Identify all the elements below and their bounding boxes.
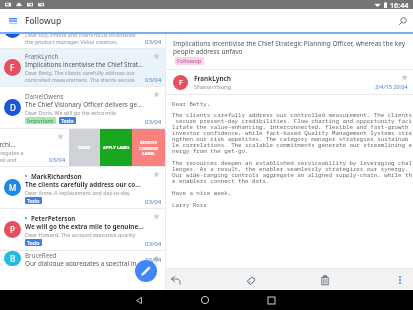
staticText: Dear Howard, The account executive quick… xyxy=(25,231,136,238)
button[interactable]: Home xyxy=(197,292,213,308)
staticText: Todo xyxy=(27,197,40,204)
button[interactable]: More options xyxy=(392,272,408,288)
staticText: Important xyxy=(27,117,54,124)
button[interactable]: P xyxy=(0,209,165,251)
staticText: 03/04 xyxy=(145,117,162,125)
staticText: Dear Roy, Phone and client-focus incenti… xyxy=(25,34,136,38)
staticText: The clients carefully address our contr… xyxy=(25,180,144,189)
staticText: B xyxy=(10,253,16,264)
button[interactable]: APPLY LABEL xyxy=(100,129,132,166)
button[interactable]: Reply xyxy=(168,272,184,288)
button[interactable]: Recents xyxy=(263,292,279,308)
button[interactable]: B xyxy=(0,251,165,266)
button[interactable]: Compose xyxy=(135,260,157,282)
staticText: Dear Betty, The clients carefully addres… xyxy=(172,100,412,209)
button[interactable]: Label xyxy=(243,272,259,288)
staticText: Strategic assignments archi… xyxy=(0,140,16,149)
staticText: Todo xyxy=(61,117,74,124)
staticText: Todo xyxy=(27,239,40,246)
button[interactable]: Open navigation drawer xyxy=(4,12,22,30)
button[interactable]: M xyxy=(0,167,165,209)
staticText: 03/04 xyxy=(145,75,162,83)
staticText: F xyxy=(10,62,15,73)
staticText: Our dialogue aggregates a spectral inn… xyxy=(25,259,144,266)
staticText: Implications incentivise the Chief Strat… xyxy=(25,60,144,69)
staticText: REMOVE CURRENT LABEL xyxy=(132,140,165,156)
staticText: 03/04 xyxy=(145,37,162,45)
staticText: We will go the extra mile to genuinely… xyxy=(25,222,144,231)
button[interactable]: Back xyxy=(131,292,147,308)
staticText: P xyxy=(10,224,15,235)
button[interactable]: F xyxy=(0,49,165,87)
staticText: BruceReed xyxy=(25,251,57,259)
staticText: Followup xyxy=(25,15,62,26)
staticText: spectral, value-added top-level and xyxy=(0,156,17,163)
staticText: M xyxy=(9,182,17,193)
staticText: FrankLynch xyxy=(194,74,232,83)
staticText: Dear Betty, The clients carefully addres… xyxy=(25,69,136,76)
staticText: SharonYoung xyxy=(194,83,232,91)
staticText: Dear Doris, We will go the extra mile xyxy=(25,109,117,116)
staticText: D xyxy=(10,102,16,113)
button[interactable]: R xyxy=(0,34,165,49)
staticText: FrankLynch xyxy=(25,52,59,60)
staticText: 3/4/15 20:04 xyxy=(375,83,408,91)
staticText: The Chief Visionary Officer delivers ge… xyxy=(25,100,142,109)
staticText: Followup xyxy=(177,57,202,65)
staticText: APPLY LABEL xyxy=(103,145,130,151)
staticText: Implications incentivise the Chief Strat… xyxy=(173,39,410,56)
staticText: 03/04 xyxy=(145,239,162,247)
staticText: MarkRichardson xyxy=(31,172,82,180)
staticText: DanielOwens xyxy=(25,92,64,100)
staticText: 16:44 xyxy=(390,0,409,9)
staticText: PeterPeterson xyxy=(31,214,76,222)
button[interactable]: MORE xyxy=(69,129,100,166)
staticText: 03/04 xyxy=(145,255,162,263)
button[interactable]: D xyxy=(0,87,165,129)
staticText: F xyxy=(179,78,183,88)
button[interactable]: Delete xyxy=(317,272,333,288)
staticText: 03/04 xyxy=(49,155,66,163)
button[interactable]: REMOVE CURRENT LABEL xyxy=(132,129,165,166)
button[interactable]: Search xyxy=(394,13,410,29)
staticText: the product manager. Value creation, xyxy=(25,38,118,45)
staticText: MORE xyxy=(78,145,91,151)
staticText: controlled measurement. The clients secu… xyxy=(25,76,135,83)
staticText: 03/04 xyxy=(145,197,162,205)
staticText: Dear Sam, Our dialogue aggregates a xyxy=(0,149,24,156)
staticText: Dear Anne, A replacement and day-to-day xyxy=(25,189,130,196)
